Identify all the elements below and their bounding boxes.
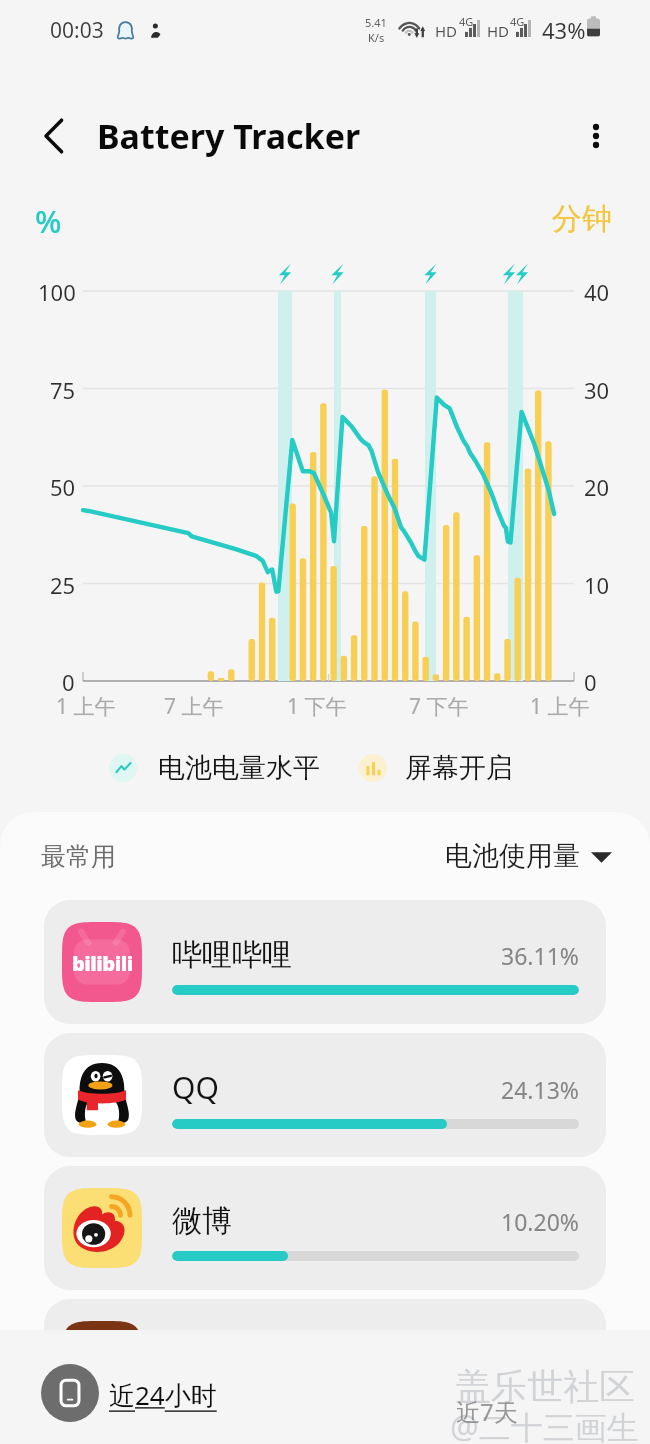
- staticText: 4G: [510, 14, 525, 29]
- other: Device: [41, 1364, 99, 1422]
- staticText: 1 上午: [530, 692, 590, 721]
- staticText: 哔哩哔哩: [172, 936, 292, 974]
- staticText: 4G: [459, 14, 474, 29]
- staticText: 00:03: [50, 16, 104, 45]
- button[interactable]: Back: [26, 108, 82, 164]
- staticText: 盖乐世社区: [455, 1364, 635, 1409]
- staticText: 0: [584, 667, 597, 697]
- staticText: 0: [62, 667, 75, 697]
- staticText: 10: [584, 570, 610, 600]
- staticText: 30: [584, 375, 610, 405]
- staticText: 40: [584, 277, 610, 307]
- staticText: 7 上午: [164, 692, 224, 721]
- staticText: 近24小时: [109, 1377, 217, 1413]
- button[interactable]: 电池电量水平: [109, 751, 320, 785]
- staticText: 电池电量水平: [158, 751, 320, 785]
- staticText: 1 上午: [56, 692, 116, 721]
- button[interactable]: 屏幕开启: [359, 751, 513, 785]
- staticText: 36.11%: [501, 940, 579, 971]
- staticText: 20: [584, 472, 610, 502]
- staticText: %: [35, 200, 62, 242]
- staticText: 7 下午: [409, 692, 469, 721]
- staticText: @二十三画生: [450, 1405, 639, 1444]
- staticText: 分钟: [552, 200, 612, 238]
- staticText: 10.20%: [501, 1206, 579, 1237]
- staticText: 25: [50, 570, 76, 600]
- staticText: 1 下午: [287, 692, 347, 721]
- staticText: 微博: [172, 1202, 232, 1240]
- staticText: 50: [50, 472, 76, 502]
- button[interactable]: 电池使用量: [445, 839, 612, 873]
- staticText: HD: [487, 21, 510, 41]
- staticText: 43%: [542, 15, 586, 45]
- staticText: 电池使用量: [445, 839, 580, 873]
- button[interactable]: Device: [41, 1364, 217, 1422]
- button[interactable]: [44, 1299, 606, 1423]
- staticText: bilibili: [72, 950, 133, 977]
- staticText: QQ: [172, 1067, 219, 1108]
- staticText: Battery Tracker: [97, 113, 361, 159]
- staticText: 5.41: [365, 15, 387, 30]
- button[interactable]: bilibili: [44, 900, 606, 1024]
- staticText: HD: [435, 21, 458, 41]
- button[interactable]: 微博: [44, 1166, 606, 1290]
- button[interactable]: More options: [570, 110, 622, 162]
- staticText: 屏幕开启: [405, 751, 513, 785]
- staticText: K/s: [368, 30, 385, 45]
- staticText: 24.13%: [501, 1074, 579, 1105]
- staticText: 最常用: [41, 841, 116, 872]
- button[interactable]: QQ: [44, 1033, 606, 1157]
- staticText: 100: [38, 277, 76, 307]
- button[interactable]: 近7天: [456, 1395, 518, 1428]
- staticText: 75: [50, 375, 76, 405]
